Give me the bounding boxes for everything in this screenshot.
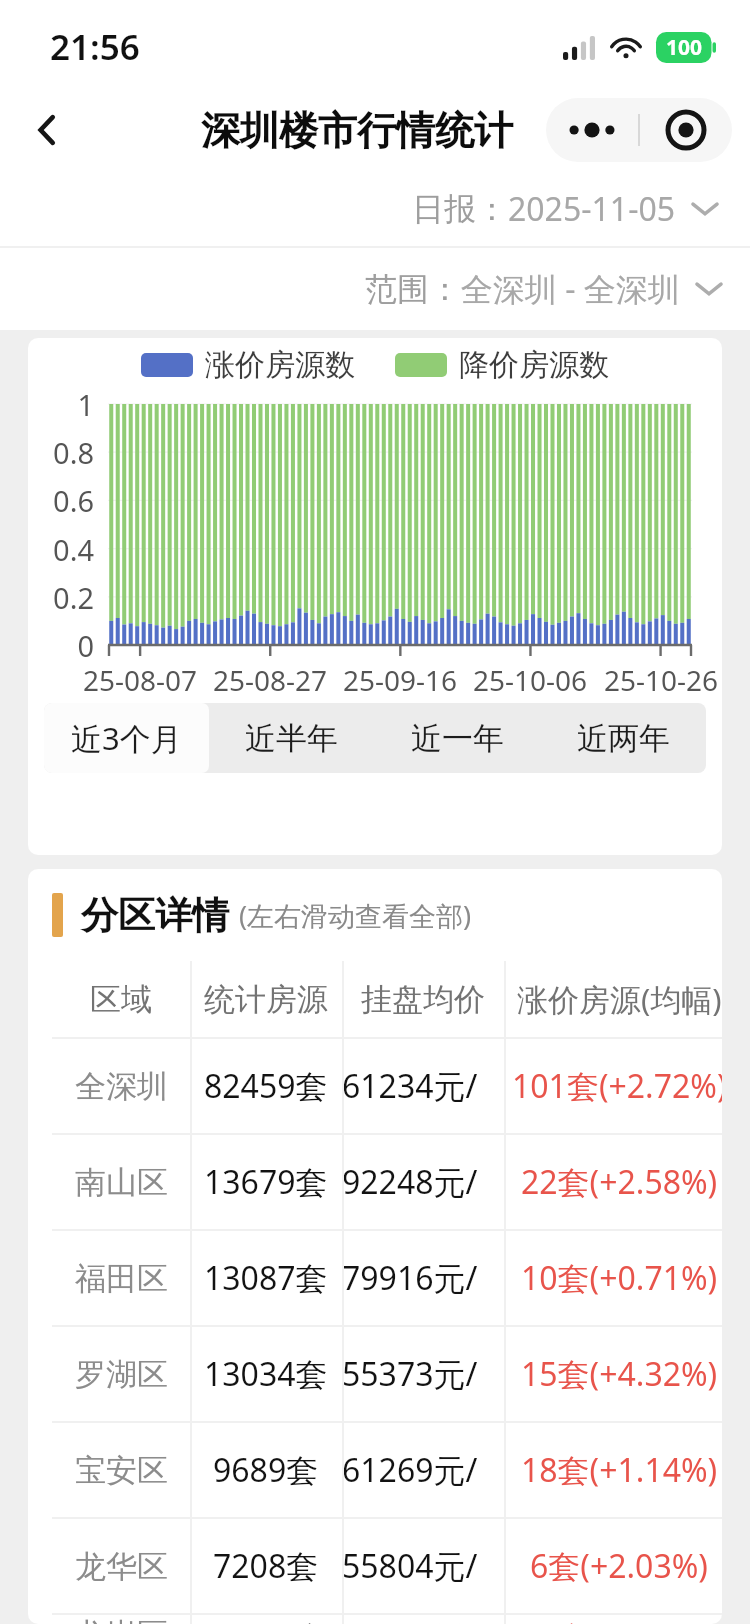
staticText: 55373元/m² [342,1352,504,1396]
staticText: 龙岗区 [75,1615,168,1624]
staticText: 宝安区 [75,1451,168,1490]
button[interactable]: 龙岗区 [52,1615,722,1624]
staticText: 南山区 [75,1163,168,1202]
staticText: 统计房源 [204,980,328,1019]
button[interactable]: 近3个月 [44,703,209,773]
button[interactable]: 福田区 [52,1231,722,1325]
staticText: 25-08-27 [195,661,345,699]
staticText: (左右滑动查看全部) [239,897,472,934]
staticText: 深圳楼市行情统计 [201,106,513,155]
staticText: 日报： [412,189,508,229]
staticText: 18套(+1.14%) [521,1448,718,1492]
button[interactable]: 南山区 [52,1135,722,1229]
staticText: 全深圳 [75,1067,168,1106]
staticText: 挂盘均价 [361,980,485,1019]
staticText: 25-10-06 [455,661,605,699]
staticText: 龙华区 [75,1547,168,1586]
staticText: 92248元/m² [342,1160,504,1204]
staticText: 分区详情 [81,892,229,939]
staticText: 2025-11-05 [508,187,676,231]
staticText: 61234元/m² [342,1064,504,1108]
staticText: 近3个月 [71,717,182,759]
button[interactable]: Close mini program [640,98,732,162]
staticText: 25-09-16 [325,661,475,699]
staticText: 55804元/m² [342,1544,504,1588]
button[interactable]: Back [16,99,78,161]
staticText: 福田区 [75,1259,168,1298]
staticText: 降价房源数 [459,346,609,384]
staticText: 22套(+2.58%) [521,1160,718,1204]
button[interactable]: 近一年 [374,703,540,773]
staticText: 15套(+4.32%) [521,1352,718,1396]
button[interactable]: 近两年 [540,703,706,773]
staticText: 13679套 [204,1160,328,1204]
staticText: 全深圳 - 全深圳 [461,267,680,311]
staticText: 13087套 [204,1256,328,1300]
staticText: 0.6 [28,481,94,520]
staticText: 10套(+0.71%) [521,1256,718,1300]
staticText: 范围： [365,269,461,309]
button[interactable]: 近半年 [209,703,374,773]
staticText: 0.4 [28,530,94,569]
staticText: 25-08-07 [65,661,215,699]
staticText: 100 [666,33,703,62]
staticText: 7208套 [213,1544,319,1588]
button[interactable]: 宝安区 [52,1423,722,1517]
staticText: 近两年 [577,719,670,758]
staticText: 61269元/m² [342,1448,504,1492]
staticText: 9689套 [213,1448,319,1492]
button[interactable]: 范围： [0,248,750,330]
staticText: 罗湖区 [75,1355,168,1394]
button[interactable]: More options [546,98,638,162]
staticText: 19535套 [204,1615,328,1624]
button[interactable]: 龙华区 [52,1519,722,1613]
staticText: 近一年 [411,719,504,758]
staticText: 79916元/m² [342,1256,504,1300]
staticText: 近半年 [245,719,338,758]
staticText: 25-10-26 [586,661,722,699]
staticText: 1 [28,385,94,424]
staticText: 21:56 [50,23,140,71]
staticText: 区域 [90,980,152,1019]
staticText: 0.2 [28,578,94,617]
staticText: 13034套 [204,1352,328,1396]
button[interactable]: 日报： [0,172,750,246]
staticText: 6套(+2.03%) [530,1544,708,1588]
button[interactable]: 罗湖区 [52,1327,722,1421]
staticText: 82459套 [204,1064,328,1108]
staticText: 涨价房源数 [205,346,355,384]
staticText: 101套(+2.72%) [512,1064,722,1108]
button[interactable]: 全深圳 [52,1039,722,1133]
staticText: 0 [28,626,94,665]
staticText: 0.8 [28,433,94,472]
staticText: 涨价房源(均幅) [517,978,722,1020]
